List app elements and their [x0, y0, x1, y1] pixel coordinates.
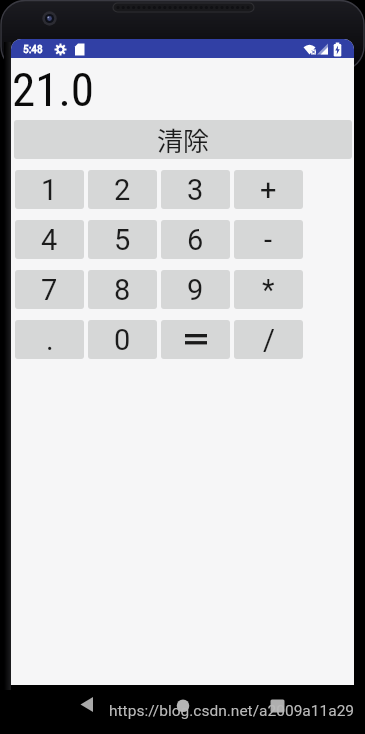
staticText: / — [263, 323, 275, 357]
button[interactable]: 4 — [15, 220, 84, 259]
staticText: 清除 — [157, 121, 210, 159]
staticText: 5:48 — [23, 42, 43, 55]
button[interactable] — [156, 688, 210, 728]
staticText: 7 — [41, 273, 58, 307]
button[interactable] — [60, 688, 114, 728]
staticText: 21.0 — [12, 62, 94, 117]
staticText: 1 — [41, 173, 58, 207]
button[interactable]: 8 — [88, 270, 157, 309]
button[interactable]: 1 — [15, 170, 84, 209]
staticText: 8 — [114, 273, 131, 307]
button[interactable]: 5 — [88, 220, 157, 259]
staticText: 2 — [114, 173, 131, 207]
staticText: 5 — [114, 223, 131, 257]
staticText: 6 — [187, 223, 204, 257]
button[interactable]: 3 — [161, 170, 230, 209]
staticText: 0 — [114, 323, 131, 357]
button[interactable]: 7 — [15, 270, 84, 309]
button[interactable] — [161, 320, 230, 359]
button[interactable]: . — [15, 320, 84, 359]
button[interactable] — [250, 688, 304, 728]
button[interactable]: / — [234, 320, 303, 359]
button[interactable]: 6 — [161, 220, 230, 259]
staticText: . — [46, 323, 54, 357]
staticText: - — [264, 223, 273, 257]
staticText: + — [260, 173, 277, 207]
button[interactable]: 9 — [161, 270, 230, 309]
staticText: * — [262, 273, 275, 307]
staticText: 4 — [41, 223, 58, 257]
button[interactable]: 0 — [88, 320, 157, 359]
button[interactable]: * — [234, 270, 303, 309]
button[interactable]: 2 — [88, 170, 157, 209]
button[interactable]: - — [234, 220, 303, 259]
staticText: https://blog.csdn.net/a2009a11a29 — [109, 702, 355, 720]
staticText: 9 — [187, 273, 204, 307]
button[interactable]: 清除 — [14, 120, 352, 159]
button[interactable]: + — [234, 170, 303, 209]
staticText: 3 — [187, 173, 204, 207]
